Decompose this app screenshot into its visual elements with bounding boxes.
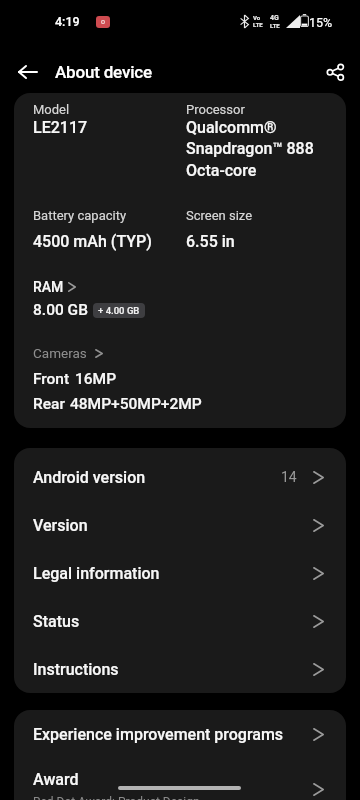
staticText: LE2117 [33, 118, 88, 137]
button[interactable]: Cameras [33, 345, 103, 361]
staticText: 14 [281, 469, 297, 485]
staticText: Processor [186, 102, 245, 117]
staticText: 15% [309, 15, 333, 30]
staticText: Award [33, 770, 79, 789]
staticText: Screen size [186, 208, 253, 223]
staticText: 16MP [75, 370, 117, 388]
staticText: Cameras [33, 345, 87, 361]
staticText: Qualcomm® Snapdragon™ 888 Octa-core [186, 118, 314, 180]
button[interactable]: Award [14, 766, 346, 800]
staticText: RAM [33, 279, 64, 295]
button[interactable]: Instructions [14, 645, 346, 693]
staticText: Rear [33, 395, 65, 413]
button[interactable]: Android version [14, 453, 346, 501]
button[interactable]: RAM [33, 279, 76, 295]
staticText: Status [33, 612, 80, 631]
staticText: Android version [33, 468, 146, 487]
staticText: Experience improvement programs [33, 725, 284, 744]
staticText: Model [33, 102, 70, 117]
staticText: Front [33, 370, 70, 388]
button[interactable]: Legal information [14, 549, 346, 597]
staticText: LTE [270, 22, 280, 29]
button[interactable]: Status [14, 597, 346, 645]
staticText: + 4.00 GB [98, 305, 140, 316]
staticText: 4500 mAh (TYP) [33, 232, 152, 251]
staticText: About device [55, 62, 152, 82]
staticText: Red Dot Award: Product Design [33, 795, 200, 800]
staticText: o [101, 18, 105, 26]
button[interactable]: Version [14, 501, 346, 549]
staticText: 4G [270, 14, 279, 22]
staticText: 48MP+50MP+2MP [70, 395, 202, 413]
button[interactable] [318, 54, 352, 90]
staticText: Instructions [33, 660, 119, 679]
button[interactable] [10, 54, 46, 90]
button[interactable]: Experience improvement programs [14, 710, 346, 758]
staticText: Battery capacity [33, 208, 127, 223]
staticText: LTE [253, 21, 263, 28]
staticText: Legal information [33, 564, 160, 583]
staticText: 6.55 in [186, 232, 235, 251]
staticText: 4:19 [55, 14, 80, 29]
staticText: Version [33, 516, 88, 535]
staticText: 8.00 GB [33, 301, 88, 319]
staticText: Vo [253, 14, 261, 21]
